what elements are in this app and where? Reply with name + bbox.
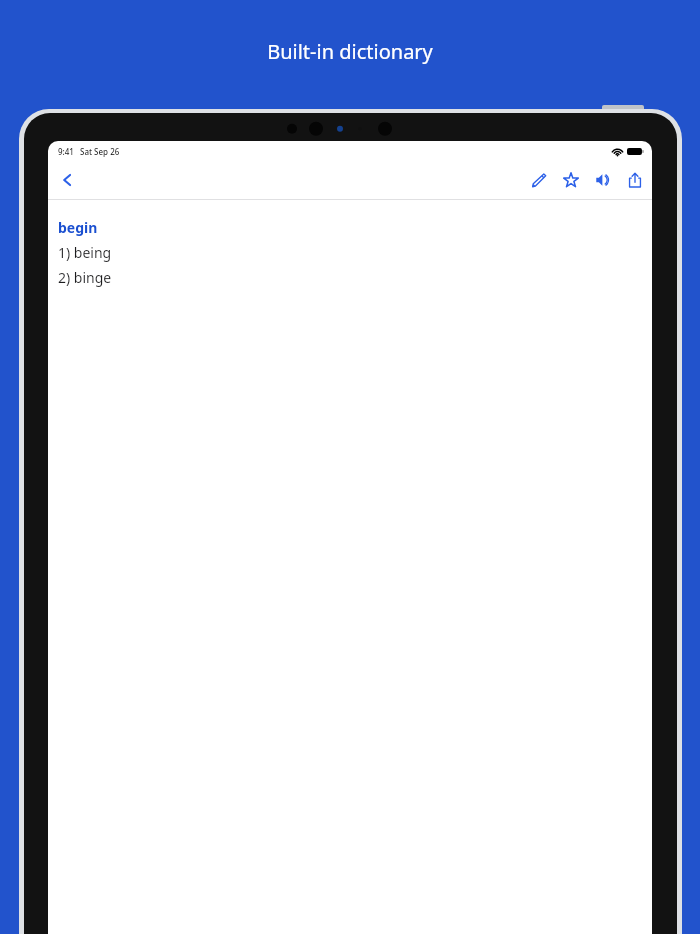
staticText: 1) being (58, 243, 112, 262)
staticText: begin (58, 218, 98, 237)
staticText: Sat Sep 26 (80, 146, 120, 157)
button[interactable]: Edit (528, 169, 550, 191)
button[interactable]: Back (50, 163, 84, 197)
button[interactable]: Share (624, 169, 646, 191)
staticText: Built-in dictionary (267, 38, 433, 65)
button[interactable]: Speak (592, 169, 614, 191)
staticText: 9:41 (58, 146, 74, 157)
button[interactable]: Favorite (560, 169, 582, 191)
staticText: 2) binge (58, 268, 112, 287)
